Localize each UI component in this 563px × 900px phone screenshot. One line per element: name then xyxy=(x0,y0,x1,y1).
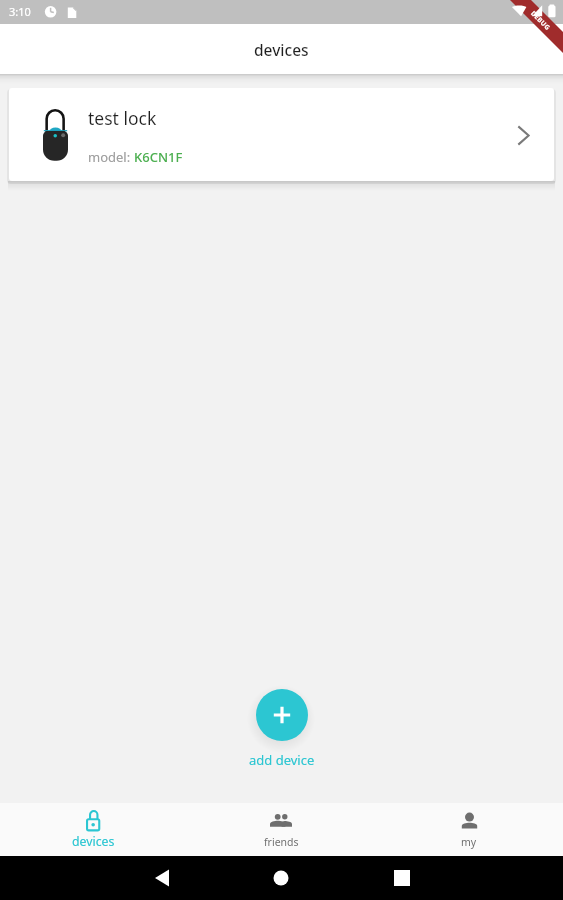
button[interactable]: devices xyxy=(0,803,187,856)
staticText: 3:10 xyxy=(9,4,31,19)
staticText: test lock xyxy=(88,106,157,130)
button[interactable]: my xyxy=(375,803,563,856)
staticText: devices xyxy=(72,833,115,850)
staticText: model: xyxy=(88,148,134,166)
other: System navigation xyxy=(0,856,563,900)
staticText: my xyxy=(461,835,477,849)
staticText: K6CN1F xyxy=(134,148,183,166)
staticText: DEBUG xyxy=(529,9,552,32)
button[interactable]: add device xyxy=(249,751,315,769)
button[interactable]: friends xyxy=(187,803,375,856)
staticText: friends xyxy=(264,835,299,849)
staticText: devices xyxy=(254,39,309,60)
button[interactable]: Add device xyxy=(256,689,308,741)
button[interactable]: test lock xyxy=(9,88,554,181)
